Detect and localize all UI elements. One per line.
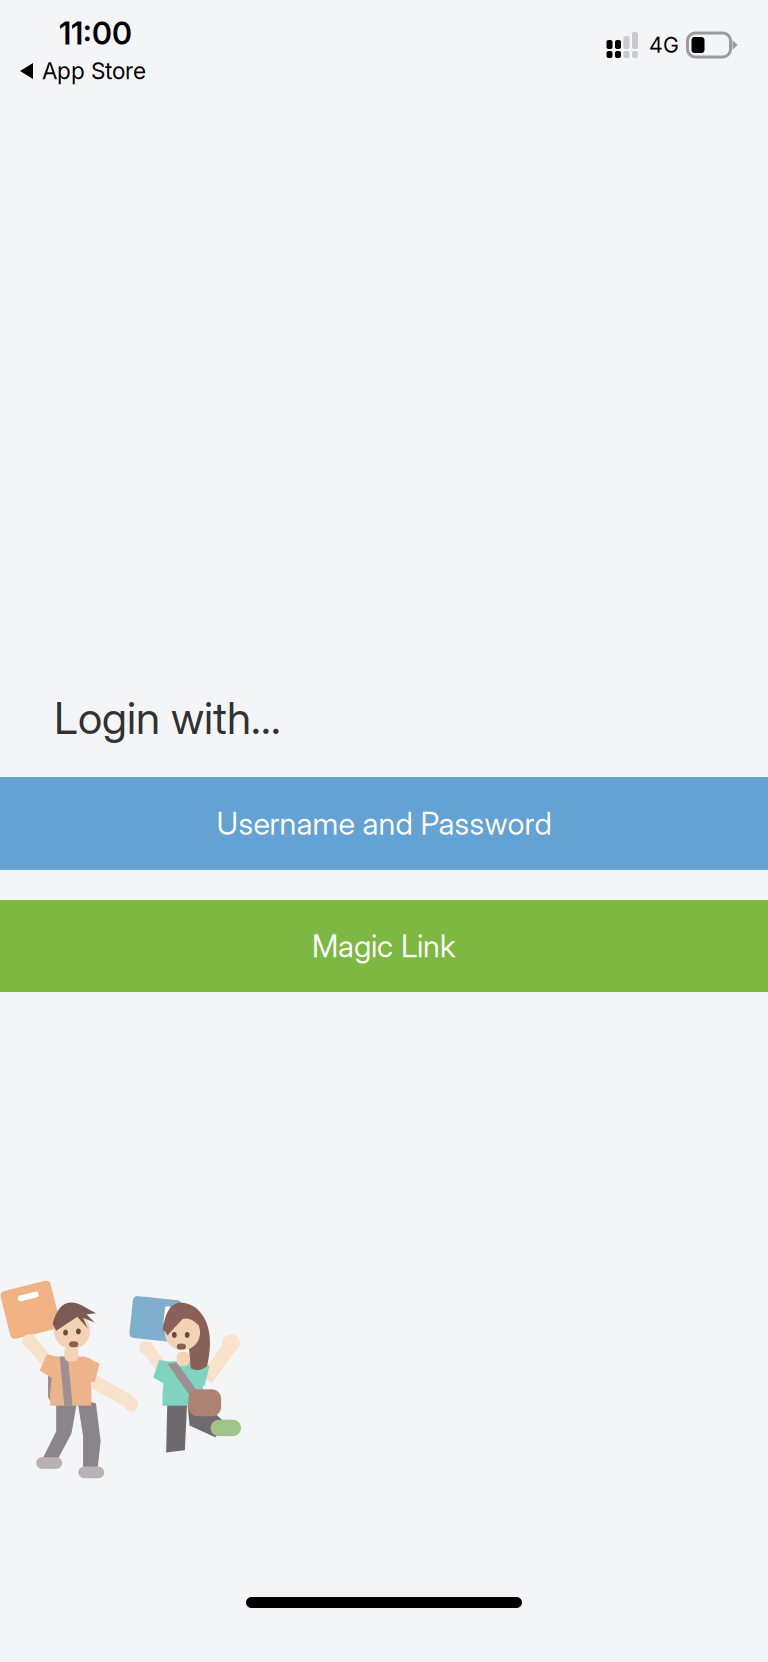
staticText: Username and Password	[216, 805, 551, 842]
staticText: Magic Link	[312, 927, 456, 964]
button[interactable]: Username and Password	[0, 777, 768, 870]
staticText: App Store	[42, 57, 146, 85]
staticText: Login with...	[54, 691, 281, 745]
staticText: 4G	[649, 32, 679, 58]
staticText: 11:00	[59, 15, 132, 52]
button[interactable]: Magic Link	[0, 900, 768, 992]
button[interactable]: App Store	[0, 52, 146, 90]
